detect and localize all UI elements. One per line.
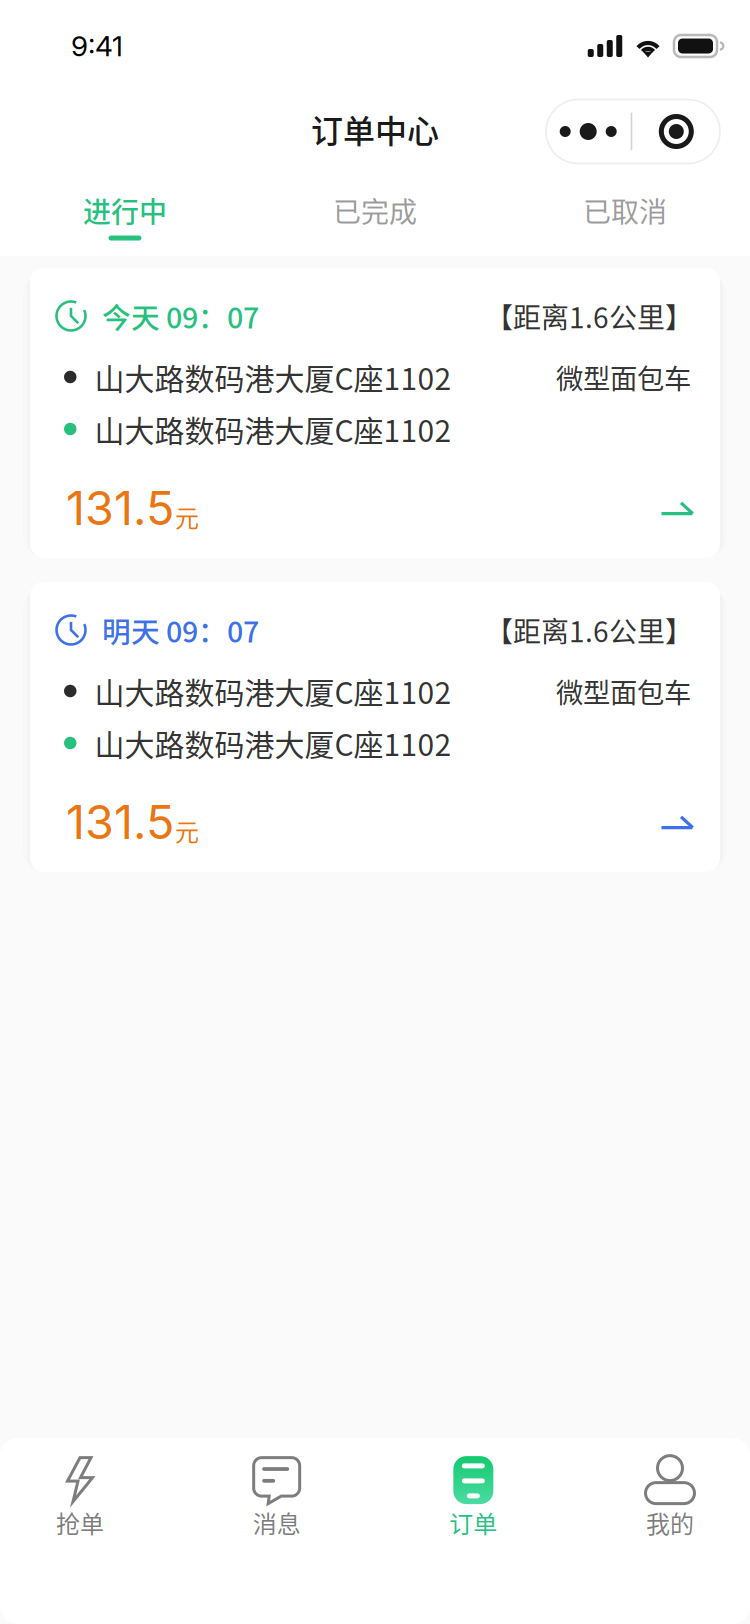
button[interactable]: 已完成: [250, 182, 500, 256]
staticText: 【距离1.6公里】: [485, 610, 693, 650]
button[interactable]: 我的: [610, 1459, 730, 1545]
staticText: 消息: [253, 1505, 301, 1540]
button[interactable]: 消息: [217, 1459, 337, 1545]
staticText: 今天 09：07: [102, 295, 259, 337]
staticText: 我的: [646, 1505, 694, 1540]
staticText: 山大路数码港大厦C座1102: [94, 721, 451, 765]
button[interactable]: 进行中: [0, 182, 250, 256]
staticText: 131.5: [66, 480, 174, 536]
staticText: 抢单: [56, 1505, 104, 1540]
staticText: 【距离1.6公里】: [485, 296, 693, 336]
staticText: 山大路数码港大厦C座1102: [94, 669, 451, 713]
staticText: 元: [175, 499, 199, 534]
staticText: 微型面包车: [556, 357, 691, 397]
staticText: 山大路数码港大厦C座1102: [94, 407, 451, 451]
staticText: 9:41: [71, 29, 123, 63]
staticText: 进行中: [83, 190, 167, 230]
button[interactable]: More: [546, 99, 720, 163]
staticText: 订单: [449, 1505, 497, 1540]
button[interactable]: 已取消: [500, 182, 750, 256]
staticText: 已完成: [333, 190, 417, 230]
staticText: 已取消: [583, 190, 667, 230]
button[interactable]: 抢单: [20, 1459, 140, 1545]
staticText: 订单中心: [311, 106, 439, 152]
staticText: 山大路数码港大厦C座1102: [94, 355, 451, 399]
staticText: 131.5: [66, 794, 174, 850]
button[interactable]: 明天 09：07: [30, 582, 720, 872]
staticText: 微型面包车: [556, 671, 691, 711]
staticText: 明天 09：07: [102, 609, 259, 651]
staticText: 元: [175, 813, 199, 848]
button[interactable]: 今天 09：07: [30, 268, 720, 558]
button[interactable]: 订单: [413, 1459, 533, 1545]
